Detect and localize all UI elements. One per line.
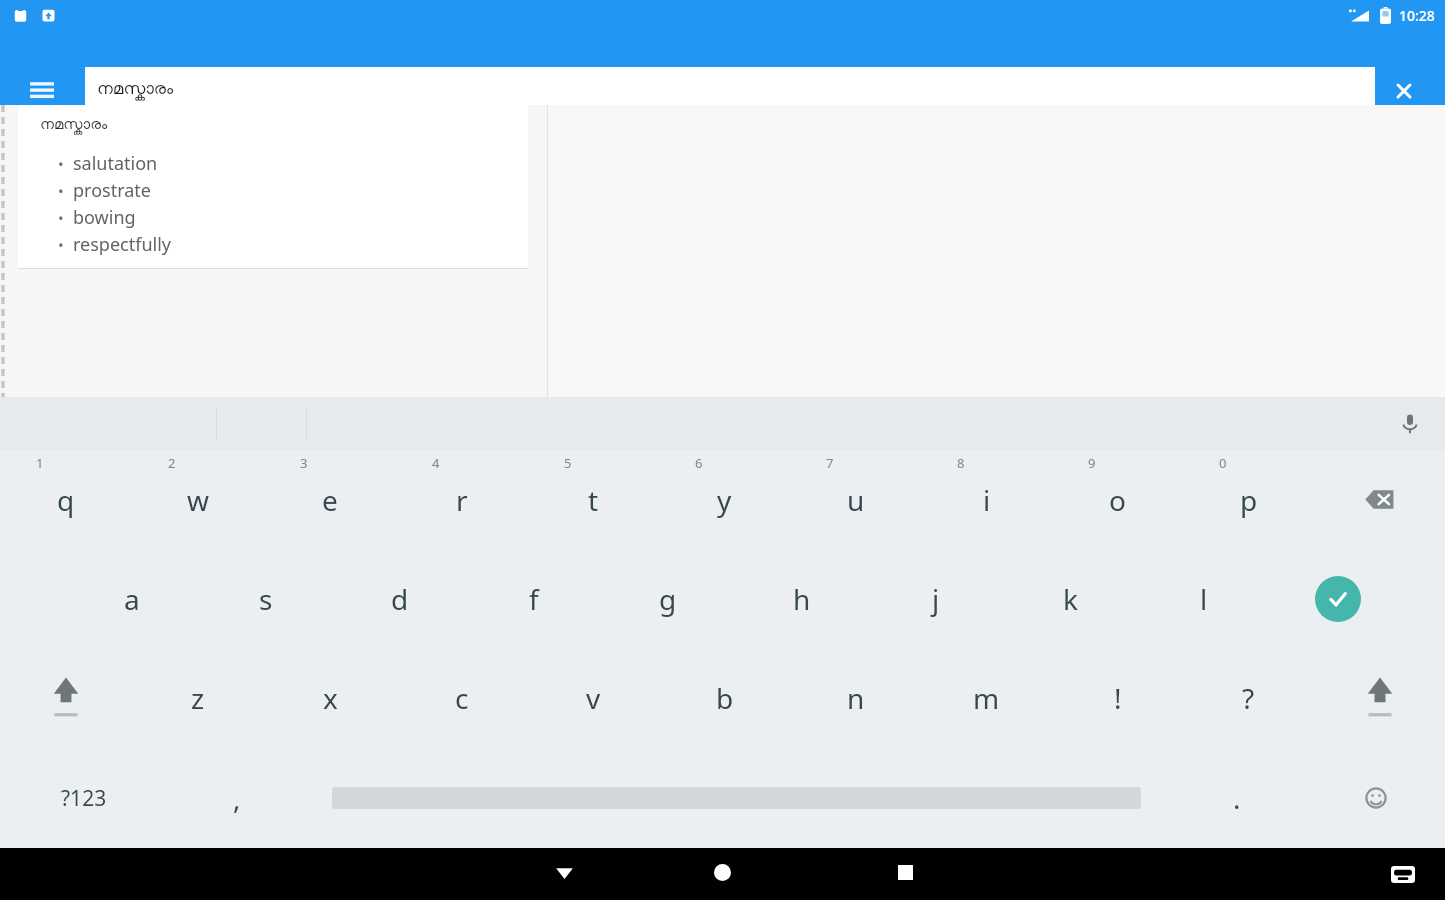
staticText: q xyxy=(57,481,75,519)
button[interactable]: Open navigation menu xyxy=(20,68,64,112)
staticText: prostrate xyxy=(73,178,151,203)
button[interactable]: . xyxy=(1167,748,1306,848)
staticText: ! xyxy=(1114,679,1122,717)
button[interactable]: o xyxy=(1052,450,1183,549)
button[interactable]: Shift xyxy=(0,648,132,748)
staticText: a xyxy=(124,580,140,618)
button[interactable]: നമസ്കാരം xyxy=(85,67,1375,109)
button[interactable]: Home xyxy=(698,848,746,896)
staticText: 10:28 xyxy=(1399,6,1435,25)
staticText: o xyxy=(1109,481,1126,519)
button[interactable]: i xyxy=(921,450,1052,549)
button[interactable]: j xyxy=(869,549,1003,648)
staticText: namaskaaram xyxy=(120,79,241,104)
button[interactable]: f xyxy=(467,549,601,648)
button[interactable]: Hide keyboard xyxy=(540,848,588,896)
staticText: നമസ്കാരം xyxy=(40,117,108,132)
staticText: respectfully xyxy=(73,232,171,257)
staticText: • xyxy=(58,154,64,174)
button[interactable]: നമസ്കാരം xyxy=(18,105,528,268)
button[interactable]: Enter xyxy=(1271,549,1405,648)
staticText: നമസ്കാരം xyxy=(97,80,174,97)
staticText: y xyxy=(717,481,732,519)
staticText: t xyxy=(588,481,599,519)
button[interactable]: b xyxy=(659,648,790,748)
button[interactable]: p xyxy=(1183,450,1314,549)
staticText: j xyxy=(932,580,940,618)
staticText: e xyxy=(322,481,338,519)
staticText: • xyxy=(58,181,64,201)
button[interactable]: ! xyxy=(1052,648,1183,748)
button[interactable]: d xyxy=(333,549,467,648)
staticText: bowing xyxy=(73,205,136,230)
button[interactable]: h xyxy=(735,549,869,648)
staticText: h xyxy=(793,580,811,618)
staticText: salutation xyxy=(73,151,158,176)
staticText: 0 xyxy=(1219,454,1227,472)
button[interactable]: s xyxy=(199,549,333,648)
button[interactable]: ? xyxy=(1183,648,1314,748)
button[interactable]: Emoji xyxy=(1306,748,1445,848)
staticText: 9 xyxy=(1088,454,1096,472)
staticText: ?123 xyxy=(61,784,107,813)
staticText: x xyxy=(323,679,338,717)
staticText: 8 xyxy=(957,454,965,472)
button[interactable]: n xyxy=(790,648,921,748)
staticText: k xyxy=(1063,580,1078,618)
button[interactable]: y xyxy=(659,450,790,549)
staticText: f xyxy=(529,580,539,618)
staticText: 2 xyxy=(168,454,176,472)
button[interactable]: w xyxy=(132,450,264,549)
staticText: 5 xyxy=(564,454,572,472)
button[interactable]: m xyxy=(921,648,1052,748)
staticText: n xyxy=(847,679,865,717)
button[interactable]: Shift xyxy=(1314,648,1445,748)
button[interactable]: Space xyxy=(306,748,1167,848)
staticText: l xyxy=(1200,580,1208,618)
staticText: w xyxy=(187,481,210,519)
staticText: 7 xyxy=(826,454,834,472)
button[interactable]: l xyxy=(1137,549,1271,648)
staticText: . xyxy=(1233,779,1241,817)
staticText: i xyxy=(983,481,991,519)
staticText: p xyxy=(1240,481,1258,519)
button[interactable]: Close search xyxy=(1381,68,1427,114)
staticText: r xyxy=(456,481,468,519)
button[interactable]: c xyxy=(396,648,528,748)
button[interactable]: Voice input xyxy=(1390,404,1430,444)
button[interactable]: Change keyboard xyxy=(1383,854,1423,894)
staticText: c xyxy=(455,679,469,717)
staticText: • xyxy=(58,235,64,255)
staticText: m xyxy=(973,679,1000,717)
staticText: 6 xyxy=(695,454,703,472)
staticText: b xyxy=(716,679,734,717)
button[interactable]: q xyxy=(0,450,132,549)
staticText: z xyxy=(191,679,205,717)
staticText: 3 xyxy=(300,454,308,472)
button[interactable]: u xyxy=(790,450,921,549)
staticText: g xyxy=(659,580,677,618)
button[interactable]: Recent apps xyxy=(881,848,929,896)
button[interactable]: , xyxy=(167,748,306,848)
staticText: ? xyxy=(1242,679,1255,717)
staticText: u xyxy=(847,481,865,519)
button[interactable]: ?123 xyxy=(0,748,167,848)
button[interactable]: r xyxy=(396,450,528,549)
staticText: d xyxy=(391,580,409,618)
button[interactable]: x xyxy=(264,648,396,748)
button[interactable]: v xyxy=(528,648,659,748)
button[interactable]: g xyxy=(601,549,735,648)
staticText: v xyxy=(586,679,601,717)
staticText: , xyxy=(233,779,241,817)
staticText: s xyxy=(259,580,273,618)
staticText: 1 xyxy=(36,454,44,472)
button[interactable]: Backspace xyxy=(1314,450,1445,549)
button[interactable]: z xyxy=(132,648,264,748)
button[interactable]: e xyxy=(264,450,396,549)
button[interactable]: a xyxy=(64,549,199,648)
staticText: • xyxy=(58,208,64,228)
button[interactable]: t xyxy=(528,450,659,549)
button[interactable]: k xyxy=(1003,549,1137,648)
staticText: 4 xyxy=(432,454,440,472)
